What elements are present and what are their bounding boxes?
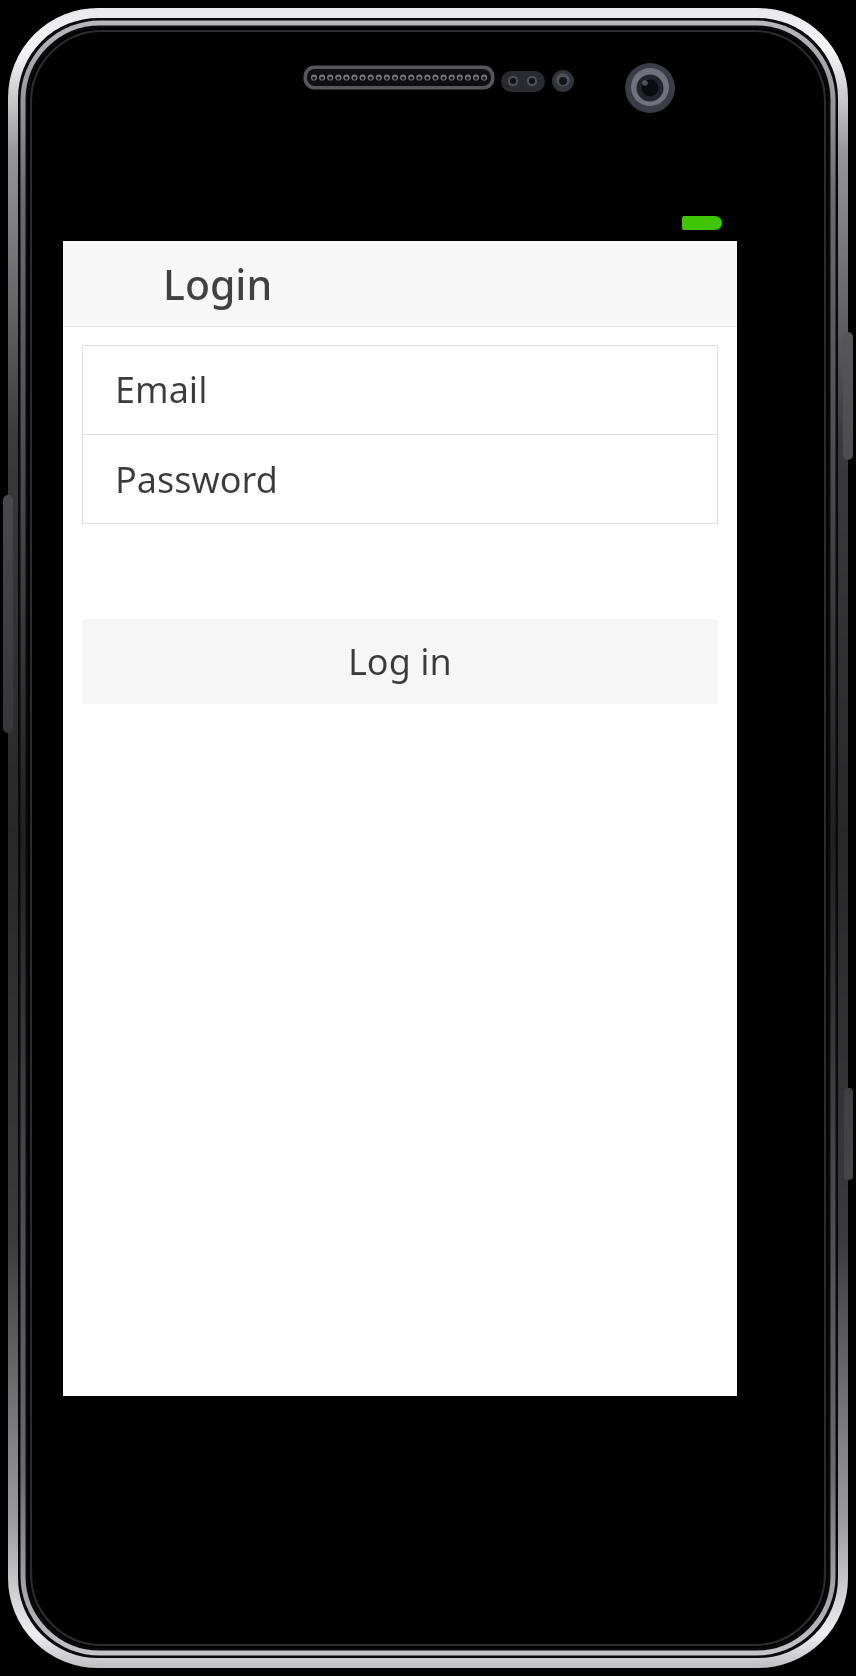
button[interactable]: Email [82, 345, 718, 434]
button[interactable]: Password [82, 435, 718, 524]
staticText: Email [115, 365, 208, 414]
staticText: Login [163, 256, 273, 312]
staticText: Password [115, 455, 278, 504]
button[interactable]: Log in [82, 619, 718, 704]
staticText: Log in [348, 637, 452, 686]
other: Battery status [682, 216, 722, 230]
